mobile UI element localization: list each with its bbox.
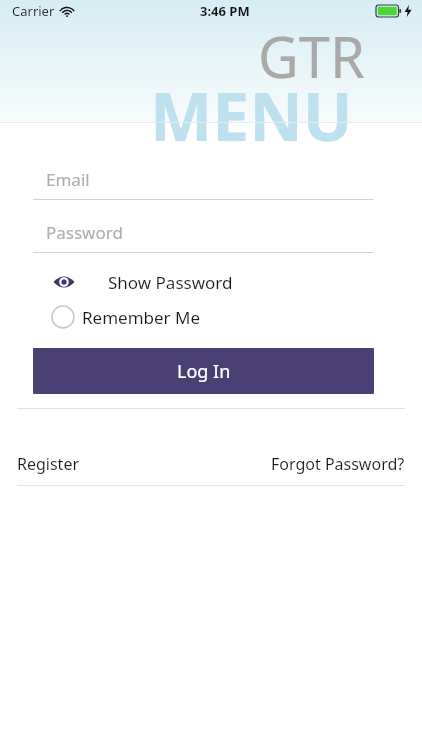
staticText: Remember Me [82, 306, 201, 329]
button[interactable]: Register [17, 453, 80, 475]
staticText: Email [46, 168, 90, 191]
staticText: Carrier [12, 2, 55, 20]
staticText: 3:46 PM [200, 2, 250, 20]
button[interactable]: Email [46, 165, 374, 193]
button[interactable]: Forgot Password? [271, 453, 405, 475]
staticText: Password [46, 221, 123, 244]
staticText: GTR [258, 18, 365, 94]
button[interactable]: Show Password [0, 266, 422, 298]
button[interactable]: Password [46, 218, 374, 246]
button[interactable]: Log In [33, 348, 374, 394]
staticText: MENU [150, 70, 353, 160]
other: Show Password [52, 270, 76, 294]
staticText: Show Password [108, 271, 233, 294]
staticText: Register [17, 453, 80, 475]
button[interactable]: Remember Me [0, 301, 422, 333]
staticText: Forgot Password? [271, 453, 405, 475]
staticText: Log In [177, 359, 231, 384]
